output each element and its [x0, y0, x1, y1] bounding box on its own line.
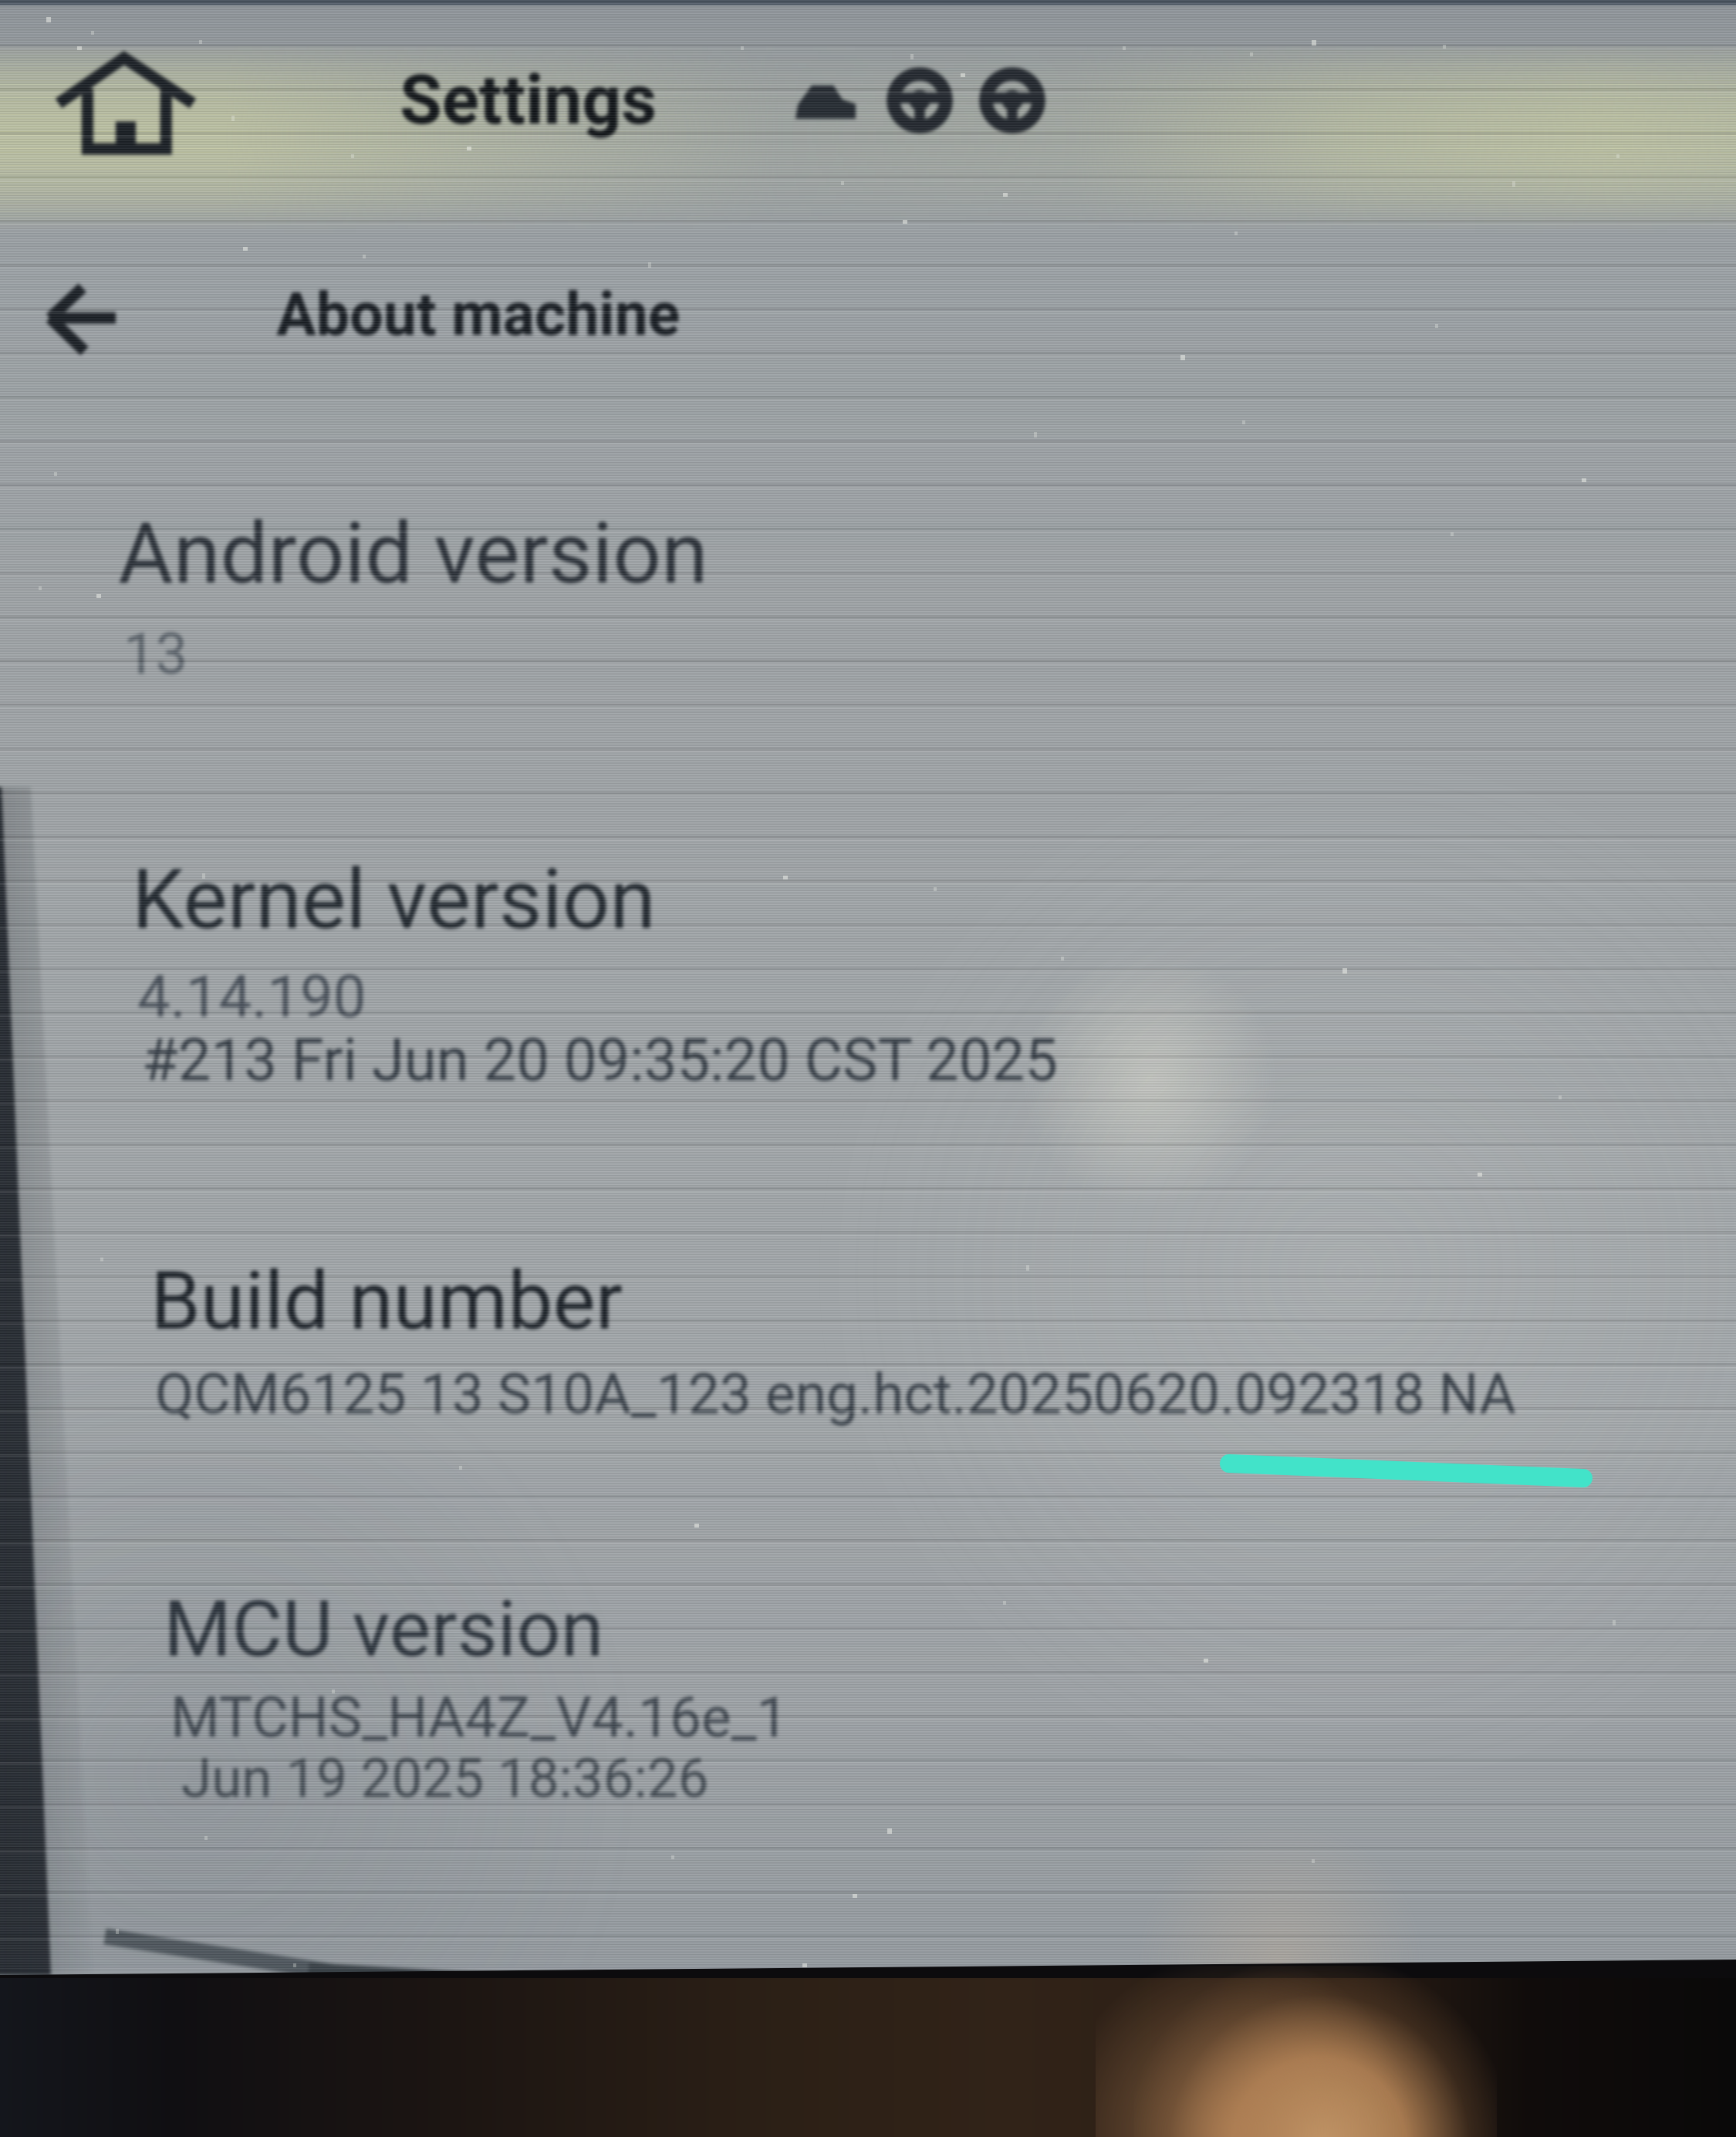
- button[interactable]: Home: [39, 35, 213, 171]
- staticText: 4.14.190: [137, 962, 366, 1031]
- staticText: #213 Fri Jun 20 09:35:20 CST 2025: [142, 1025, 1058, 1094]
- button[interactable]: Driving mode: [880, 60, 960, 140]
- staticText: MTCHS_HA4Z_V4.16e_1: [171, 1684, 789, 1750]
- staticText: Jun 19 2025 18:36:26: [181, 1746, 709, 1810]
- staticText: QCM6125 13 S10A_123 eng.hct.20250620.092…: [155, 1361, 1516, 1427]
- button[interactable]: Back: [23, 262, 139, 375]
- staticText: Android version: [118, 504, 708, 603]
- staticText: MCU version: [164, 1583, 604, 1674]
- button[interactable]: Vehicle settings: [972, 60, 1052, 140]
- staticText: About machine: [276, 280, 681, 349]
- staticText: Settings: [400, 59, 657, 140]
- button[interactable]: Vehicle: [778, 66, 871, 134]
- staticText: Kernel version: [132, 851, 656, 949]
- staticText: Build number: [150, 1254, 623, 1349]
- staticText: 13: [123, 620, 188, 687]
